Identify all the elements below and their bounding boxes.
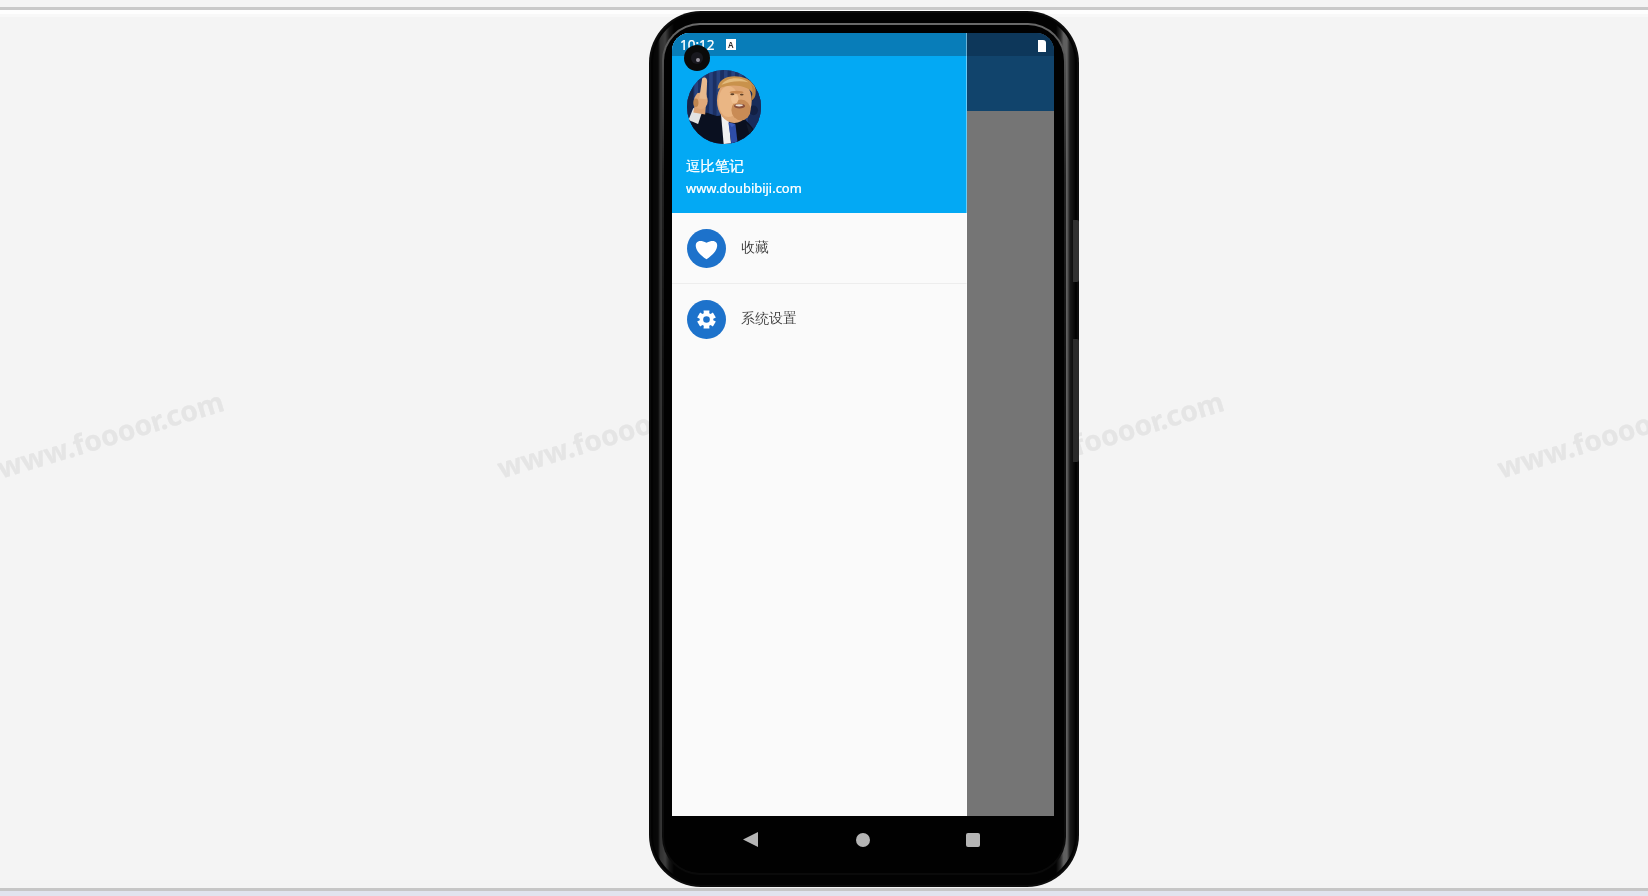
staticText: 收藏 [741, 239, 769, 257]
staticText: A [728, 39, 734, 50]
staticText: 系统设置 [741, 310, 797, 328]
button[interactable]: Recent apps [950, 817, 995, 862]
staticText: www.foooor.com [1493, 381, 1648, 486]
button[interactable]: Home [840, 817, 885, 862]
staticText: www.foooor.com [993, 381, 1228, 486]
button[interactable]: Back [728, 817, 773, 862]
button[interactable]: 收藏 [672, 213, 967, 283]
staticText: 逗比笔记 [686, 157, 744, 175]
button[interactable]: 系统设置 [672, 284, 967, 354]
staticText: 10:12 [680, 36, 715, 54]
staticText: www.doubibiji.com [686, 179, 802, 197]
staticText: www.foooor.com [0, 381, 228, 486]
staticText: www.foooor.com [493, 381, 728, 486]
